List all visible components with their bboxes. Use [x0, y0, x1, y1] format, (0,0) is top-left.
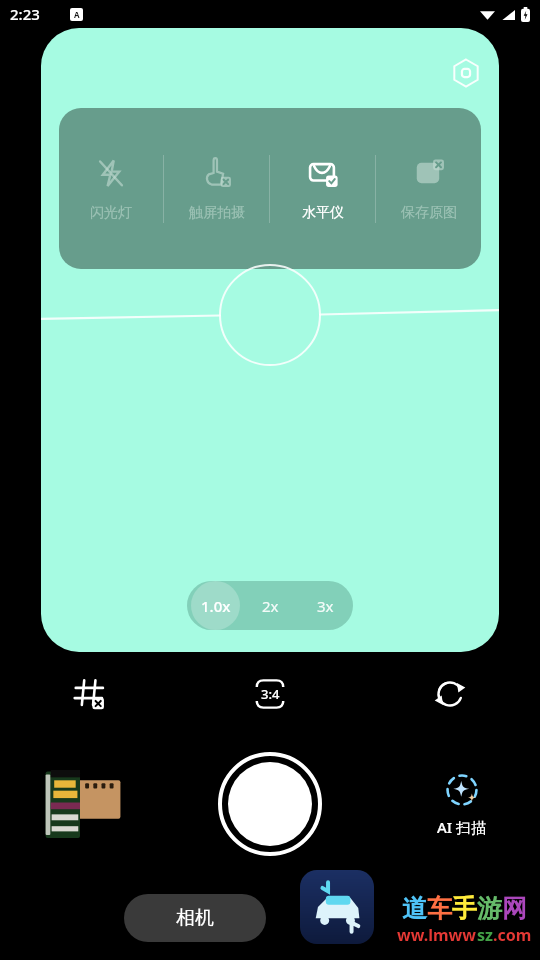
staticText: 2x: [262, 596, 279, 616]
staticText: 网: [502, 893, 527, 924]
button[interactable]: 闪光灯: [59, 108, 163, 269]
button[interactable]: Gallery: [36, 766, 124, 842]
button[interactable]: 3x: [298, 581, 353, 630]
staticText: A: [74, 9, 80, 20]
button[interactable]: 水平仪: [270, 108, 375, 269]
staticText: 3:4: [261, 685, 280, 703]
staticText: 水平仪: [302, 204, 344, 222]
button[interactable]: Aspect ratio 3:4: [180, 668, 360, 720]
button[interactable]: 1.0x: [187, 581, 243, 630]
button[interactable]: 触屏拍摄: [164, 108, 269, 269]
button[interactable]: 保存原图: [376, 108, 481, 269]
staticText: AI 扫描: [437, 817, 487, 837]
button[interactable]: Grid off: [0, 668, 180, 720]
staticText: 车: [427, 893, 452, 924]
staticText: 游: [477, 893, 502, 924]
staticText: 手: [452, 893, 477, 924]
button[interactable]: AI 扫描: [412, 771, 512, 837]
staticText: 触屏拍摄: [189, 204, 245, 222]
button[interactable]: 2x: [243, 581, 298, 630]
staticText: 保存原图: [401, 204, 457, 222]
button[interactable]: Settings: [449, 56, 483, 90]
staticText: 相机: [176, 906, 214, 930]
staticText: .com: [493, 924, 532, 946]
staticText: 3x: [317, 596, 334, 616]
button[interactable]: 相机: [124, 894, 266, 942]
staticText: 1.0x: [201, 596, 231, 616]
staticText: ww.lmww: [397, 924, 477, 946]
button[interactable]: Shutter: [216, 750, 324, 858]
staticText: sz: [477, 924, 493, 946]
staticText: 闪光灯: [90, 204, 132, 222]
staticText: 2:23: [10, 4, 40, 24]
button[interactable]: App: [300, 870, 374, 944]
staticText: 道: [402, 893, 427, 924]
button[interactable]: Switch camera: [360, 668, 540, 720]
